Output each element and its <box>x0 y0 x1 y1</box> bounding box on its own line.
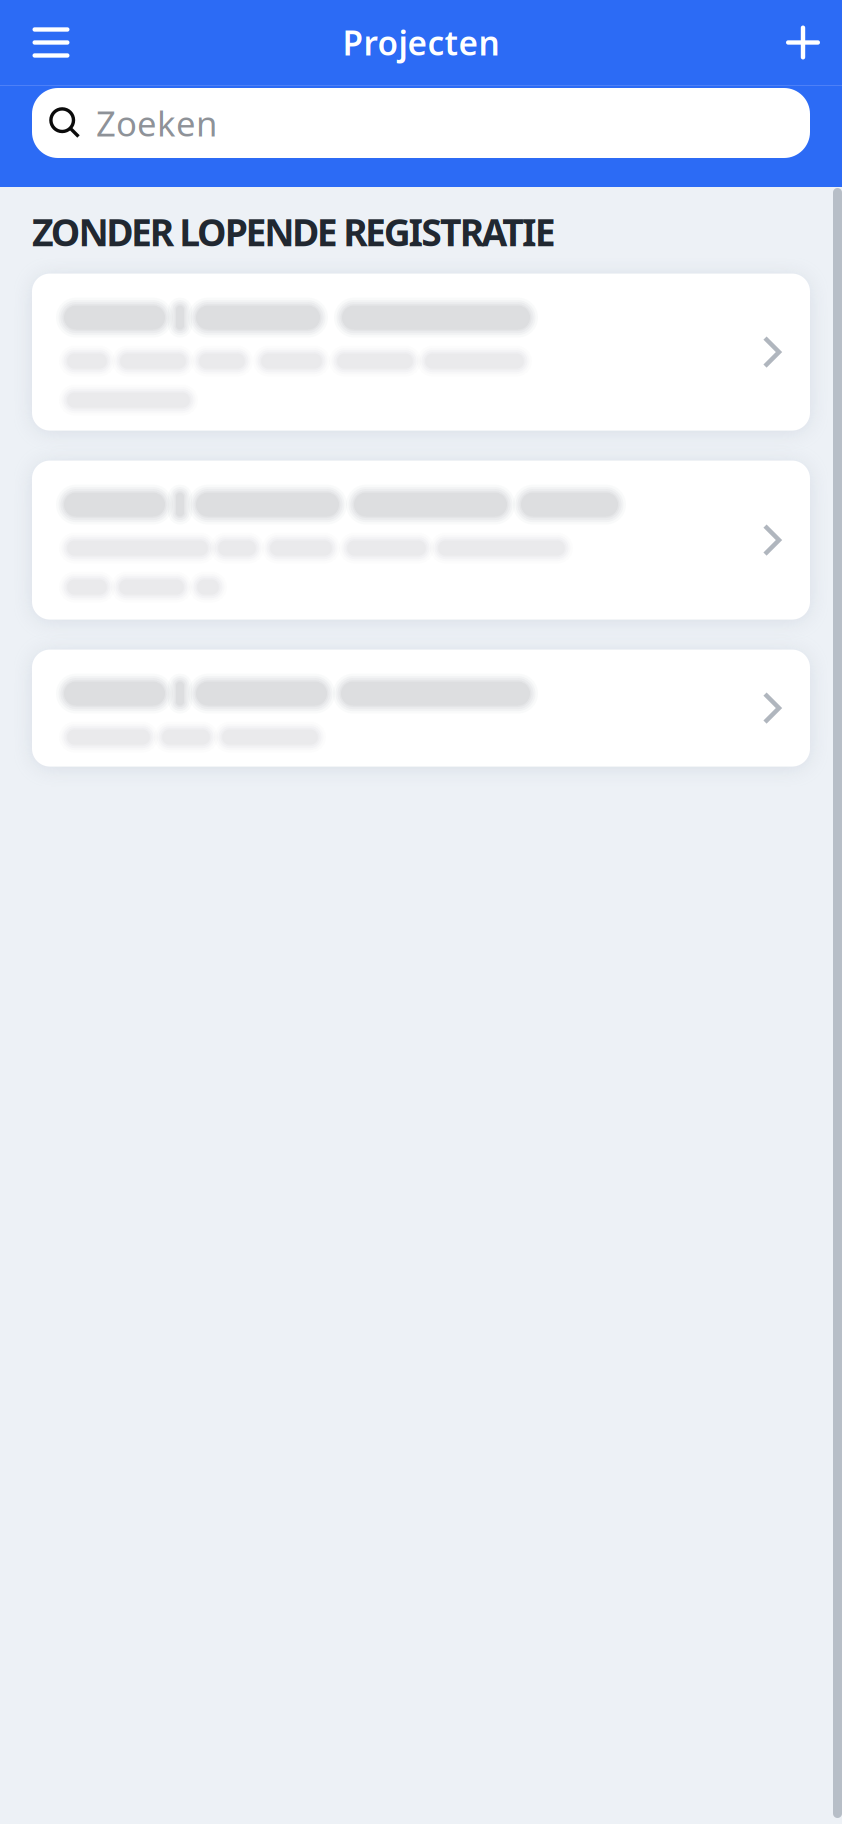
staticText: Projecten <box>342 20 499 65</box>
button[interactable]: Nieuw project <box>764 0 842 85</box>
button[interactable] <box>32 461 810 620</box>
button[interactable]: Menu <box>0 0 102 85</box>
button[interactable] <box>32 650 810 767</box>
staticText: ZONDER LOPENDE REGISTRATIE <box>32 207 556 257</box>
button[interactable] <box>32 274 810 431</box>
staticText: Zoeken <box>96 100 217 146</box>
button[interactable]: Zoeken <box>32 88 810 158</box>
